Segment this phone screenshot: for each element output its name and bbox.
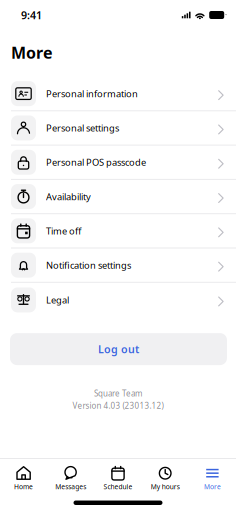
button[interactable]: Personal settings [0, 111, 236, 146]
button[interactable]: More [189, 465, 236, 491]
button[interactable]: My hours [142, 465, 189, 491]
button[interactable]: Schedule [94, 465, 142, 491]
staticText: Schedule [103, 482, 132, 491]
staticText: Legal [46, 294, 69, 306]
staticText: Log out [98, 342, 139, 356]
button[interactable]: Messages [47, 465, 94, 491]
button[interactable]: Notification settings [0, 248, 236, 283]
staticText: Availability [46, 190, 91, 203]
staticText: Home [14, 482, 33, 491]
staticText: Square Team [94, 388, 142, 399]
staticText: Personal information [46, 87, 138, 100]
button[interactable]: Personal information [0, 77, 236, 111]
staticText: 9:41 [21, 8, 42, 22]
staticText: Notification settings [46, 259, 131, 271]
button[interactable]: Availability [0, 180, 236, 214]
staticText: Personal settings [46, 122, 119, 134]
staticText: Version 4.03 (23013.12) [72, 400, 163, 411]
staticText: More [204, 482, 221, 491]
staticText: Messages [55, 482, 86, 491]
staticText: Personal POS passcode [46, 156, 146, 168]
button[interactable]: Time off [0, 214, 236, 248]
button[interactable]: Legal [0, 283, 236, 317]
button[interactable]: Home [0, 465, 47, 491]
staticText: Time off [46, 225, 81, 237]
button[interactable]: Personal POS passcode [0, 146, 236, 180]
button[interactable]: Log out [10, 333, 227, 365]
staticText: More [11, 42, 53, 63]
staticText: My hours [151, 482, 180, 491]
